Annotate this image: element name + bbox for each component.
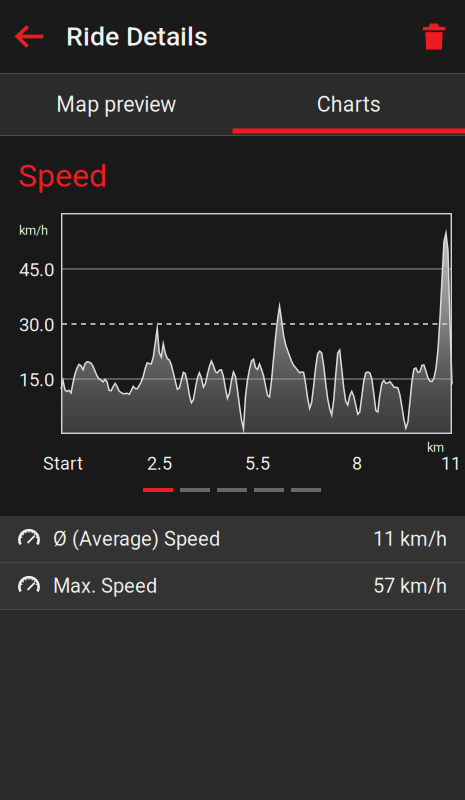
button[interactable]: Map preview	[0, 73, 232, 136]
button[interactable]: Ø (Average) Speed	[0, 516, 465, 562]
staticText: 11 km/h	[373, 527, 447, 551]
staticText: Ø (Average) Speed	[53, 527, 220, 551]
staticText: km	[427, 440, 444, 455]
staticText: 5.5	[245, 453, 270, 474]
button[interactable]: Charts	[232, 73, 465, 136]
staticText: Ride Details	[66, 21, 208, 52]
staticText: Start	[43, 453, 83, 474]
staticText: 57 km/h	[373, 574, 447, 598]
staticText: Charts	[317, 92, 381, 117]
staticText: 8	[352, 453, 362, 474]
staticText: 2.5	[147, 453, 172, 474]
button[interactable]: Back	[0, 0, 60, 73]
staticText: km/h	[19, 223, 48, 238]
staticText: Map preview	[56, 92, 176, 117]
staticText: 15.0	[19, 369, 54, 391]
button[interactable]: Max. Speed	[0, 563, 465, 609]
staticText: 30.0	[19, 314, 54, 336]
staticText: 45.0	[19, 259, 54, 281]
staticText: Max. Speed	[53, 574, 157, 598]
staticText: Speed	[18, 157, 107, 194]
button[interactable]: Delete ride	[403, 0, 465, 73]
staticText: 11	[441, 453, 461, 474]
